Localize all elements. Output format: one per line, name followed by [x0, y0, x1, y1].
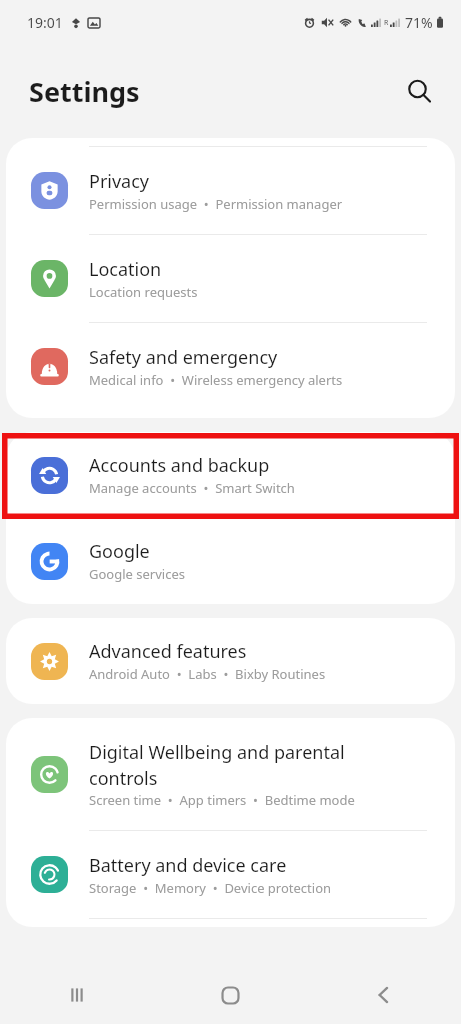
staticText: Google [89, 539, 150, 564]
staticText: Manage accounts • Smart Switch [89, 479, 295, 497]
staticText: Advanced features [89, 639, 247, 664]
staticText: Android Auto • Labs • Bixby Routines [89, 665, 326, 683]
staticText: Location [89, 257, 162, 282]
button[interactable]: Back [307, 966, 461, 1024]
button[interactable]: Google [6, 518, 455, 604]
button[interactable]: Home [153, 966, 307, 1024]
button[interactable]: Digital Wellbeing and parental controls [6, 718, 455, 830]
staticText: 19:01 [27, 13, 63, 32]
button[interactable]: Location [6, 235, 455, 322]
button[interactable]: Safety and emergency [6, 323, 455, 410]
button[interactable]: Battery and device care [6, 831, 455, 918]
button[interactable]: Advanced features [6, 618, 455, 704]
staticText: R [384, 18, 389, 28]
button[interactable]: Accounts and backup [6, 432, 455, 518]
staticText: Permission usage • Permission manager [89, 195, 343, 213]
button[interactable]: Search [397, 69, 441, 113]
staticText: Screen time • App timers • Bedtime mode [89, 791, 355, 809]
button[interactable]: Privacy [6, 147, 455, 234]
staticText: 71% [405, 13, 433, 32]
staticText: Location requests [89, 283, 198, 301]
staticText: Digital Wellbeing and parental controls [89, 740, 407, 790]
staticText: Storage • Memory • Device protection [89, 879, 332, 897]
staticText: Google services [89, 565, 185, 583]
staticText: Medical info • Wireless emergency alerts [89, 371, 343, 389]
staticText: Battery and device care [89, 853, 287, 878]
staticText: Privacy [89, 169, 150, 194]
staticText: Accounts and backup [89, 453, 270, 478]
button[interactable]: Recent apps [0, 966, 153, 1024]
staticText: Settings [29, 73, 140, 110]
staticText: Safety and emergency [89, 345, 278, 370]
